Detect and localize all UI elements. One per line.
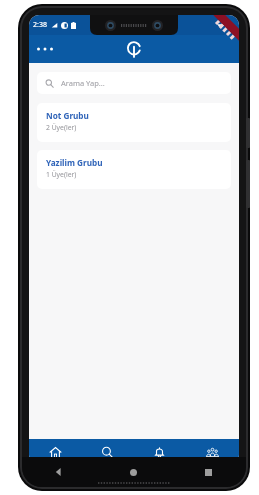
button[interactable]: Home	[29, 439, 81, 465]
button[interactable]: Home	[96, 457, 171, 487]
staticText: Not Grubu	[46, 110, 89, 121]
button[interactable]: Arama Yap...	[37, 72, 231, 94]
staticText: Arama Yap...	[61, 78, 105, 88]
button[interactable]: Notifications	[133, 439, 186, 465]
staticText: 1 Üye(ler)	[46, 170, 77, 179]
button[interactable]: Recents	[171, 457, 246, 487]
staticText: 2:38	[33, 20, 47, 30]
staticText: Yazilim Grubu	[46, 157, 103, 168]
staticText: 2 Üye(ler)	[46, 123, 77, 132]
button[interactable]: Groups	[186, 439, 239, 465]
button[interactable]: Yazilim Grubu	[37, 150, 231, 189]
button[interactable]: Back	[22, 457, 96, 487]
button[interactable]: Search	[81, 439, 133, 465]
button[interactable]: Not Grubu	[37, 103, 231, 142]
button[interactable]: Menu	[32, 36, 58, 62]
